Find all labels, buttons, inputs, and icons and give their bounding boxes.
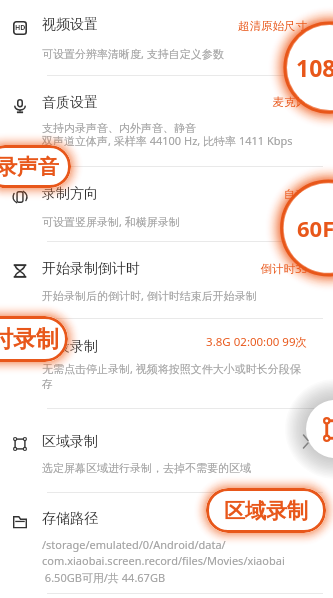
staticText: 无需点击停止录制, 视频将按照文件大小或时长分段保存	[42, 361, 308, 391]
staticText: HD	[15, 23, 26, 33]
staticText: 麦克风	[0, 95, 307, 186]
button[interactable]: 分段录制	[0, 318, 333, 408]
staticText: 可设置分辨率清晰度, 支持自定义参数	[42, 46, 308, 61]
staticText: 开始录制倒计时	[42, 260, 140, 278]
button[interactable]: 区域录制	[206, 488, 326, 533]
staticText: 音质设置	[42, 94, 98, 112]
staticText: 3.8G 02:00:00 99次	[0, 334, 307, 424]
staticText: 录声音	[0, 154, 59, 180]
button[interactable]: HD	[0, 0, 333, 75]
button[interactable]: 录制方向	[0, 166, 333, 241]
button[interactable]: 存储路径	[0, 492, 333, 593]
button[interactable]: 1080P	[285, 23, 333, 112]
staticText: 可设置竖屏录制, 和横屏录制	[42, 214, 308, 229]
button[interactable]: 区域录制	[306, 400, 333, 458]
staticText: 支持内录声音、内外声音、静音 双声道立体声, 采样率 44100 Hz, 比特率…	[42, 121, 308, 148]
button[interactable]: 开始录制倒计时	[0, 241, 333, 318]
staticText: 开始录制后的倒计时, 倒计时结束后开始录制	[42, 288, 308, 303]
staticText: 区域录制	[224, 498, 308, 524]
staticText: /storage/emulated/0/Android/data/ com.xi…	[42, 537, 308, 585]
staticText: 倒计时3s	[0, 261, 307, 338]
button[interactable]: 定时录制	[0, 316, 68, 362]
button[interactable]: 录声音	[0, 145, 71, 188]
staticText: 区域录制	[42, 433, 98, 451]
staticText: 60FPS	[297, 213, 333, 243]
button[interactable]: 区域录制	[0, 408, 333, 492]
staticText: 分段录制	[42, 338, 98, 356]
staticText: 超清原始尺寸	[0, 19, 307, 100]
staticText: 选定屏幕区域进行录制，去掉不需要的区域	[42, 461, 308, 475]
staticText: 视频设置	[42, 16, 98, 34]
button[interactable]: 60FPS	[282, 181, 333, 275]
staticText: 定时录制	[0, 325, 59, 354]
staticText: 1080P	[296, 52, 333, 83]
staticText: 存储路径	[42, 510, 98, 528]
staticText: 自动	[0, 187, 307, 262]
button[interactable]: 音质设置	[0, 75, 333, 166]
staticText: 录制方向	[42, 185, 98, 203]
